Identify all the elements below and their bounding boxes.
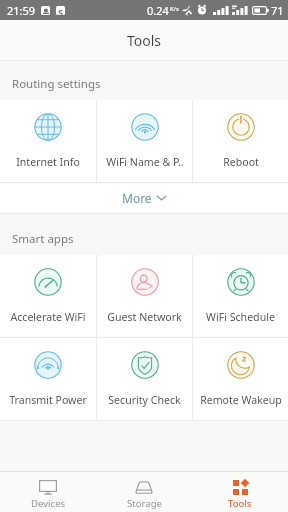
button[interactable]: Reboot <box>193 100 288 182</box>
staticText: Routing settings <box>12 76 101 92</box>
staticText: Transmit Power <box>9 393 87 407</box>
staticText: Tools <box>228 497 252 510</box>
staticText: WiFi Name & P.. <box>106 155 184 169</box>
button[interactable]: Accelerate WiFi <box>0 255 96 337</box>
button[interactable]: Security Check <box>97 338 192 420</box>
staticText: Internet Info <box>16 155 80 169</box>
button[interactable]: Guest Network <box>97 255 192 337</box>
staticText: Remote Wakeup <box>200 393 282 407</box>
staticText: Accelerate WiFi <box>10 310 86 324</box>
staticText: Smart apps <box>12 231 74 247</box>
button[interactable]: Devices <box>0 472 96 512</box>
staticText: Tools <box>127 31 162 50</box>
staticText: More <box>122 190 152 206</box>
staticText: 0.24 <box>147 3 169 18</box>
button[interactable]: Storage <box>96 472 192 512</box>
staticText: S <box>58 6 63 15</box>
button[interactable]: Internet Info <box>0 100 96 182</box>
staticText: Devices <box>31 497 66 510</box>
button[interactable]: WiFi Schedule <box>193 255 288 337</box>
staticText: K/s <box>170 5 179 13</box>
staticText: Guest Network <box>107 310 182 324</box>
button[interactable]: Transmit Power <box>0 338 96 420</box>
button[interactable]: More <box>0 183 288 213</box>
staticText: Storage <box>127 497 162 510</box>
staticText: 21:59 <box>7 3 36 18</box>
button[interactable]: WiFi Name & P.. <box>97 100 192 182</box>
staticText: WiFi Schedule <box>206 310 275 324</box>
button[interactable]: Tools <box>192 472 288 512</box>
staticText: 71 <box>271 3 284 18</box>
button[interactable]: Remote Wakeup <box>193 338 288 420</box>
staticText: Security Check <box>108 393 181 407</box>
staticText: Reboot <box>223 155 259 169</box>
